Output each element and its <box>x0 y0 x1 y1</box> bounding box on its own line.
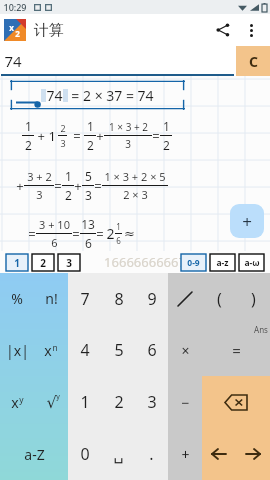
button[interactable]: = <box>202 324 270 376</box>
staticText: 3 <box>147 391 157 413</box>
staticText: √ <box>46 393 57 412</box>
staticText: ≈ <box>124 226 135 241</box>
staticText: × <box>181 341 190 360</box>
button[interactable]: 1 <box>68 376 102 428</box>
staticText: 2 <box>106 224 115 243</box>
staticText: + <box>242 210 252 233</box>
staticText: 0-9 <box>187 257 200 269</box>
button[interactable]: ) <box>236 273 270 324</box>
staticText: 2 <box>60 122 66 134</box>
staticText: = <box>54 177 62 195</box>
button[interactable]: 8 <box>102 273 135 324</box>
staticText: 2 <box>65 187 72 203</box>
button[interactable]: n! <box>34 273 68 324</box>
staticText: 2 <box>87 137 94 153</box>
staticText: 2 <box>25 137 32 153</box>
button[interactable]: 2 <box>102 376 135 428</box>
staticText: 2 <box>15 28 20 39</box>
staticText: + <box>16 177 24 195</box>
button[interactable]: 3 <box>135 376 168 428</box>
staticText: n <box>52 342 58 353</box>
button[interactable]: + <box>168 428 202 480</box>
staticText: a-ω <box>244 257 260 269</box>
button[interactable]: Share <box>210 17 236 43</box>
staticText: 3 <box>66 256 72 270</box>
button[interactable]: a-z <box>210 254 235 271</box>
button[interactable]: Move right <box>236 428 270 480</box>
staticText: ␣ <box>113 445 124 464</box>
button[interactable]: Fraction <box>168 273 202 324</box>
button[interactable]: Move left <box>202 428 236 480</box>
staticText: C <box>249 52 258 71</box>
staticText: ) <box>251 288 256 310</box>
staticText: 1 <box>25 118 32 134</box>
staticText: 3 <box>125 137 131 151</box>
staticText: x <box>11 393 19 412</box>
button[interactable]: 5 <box>102 324 135 376</box>
staticText: 6 <box>85 235 92 251</box>
staticText: 2 <box>163 137 170 153</box>
staticText: ( <box>217 288 222 310</box>
staticText: 3 <box>36 187 43 202</box>
button[interactable]: x <box>0 376 34 428</box>
button[interactable]: 1 <box>6 254 28 271</box>
button[interactable]: 0-9 <box>181 254 206 271</box>
button[interactable]: − <box>168 376 202 428</box>
staticText: 1 × 3 + 2 × 5 <box>104 169 166 184</box>
button[interactable]: More options <box>238 17 264 43</box>
button[interactable]: Backspace <box>202 376 270 428</box>
staticText: x <box>44 341 52 360</box>
staticText: 6 <box>116 235 121 246</box>
button[interactable]: Add <box>230 204 264 238</box>
staticText: 计算 <box>34 21 64 40</box>
staticText: 2 <box>40 256 46 270</box>
staticText: 1 <box>65 168 72 184</box>
button[interactable]: 2 <box>32 254 54 271</box>
staticText: 0 <box>80 443 90 465</box>
staticText: Ans <box>254 324 268 335</box>
button[interactable]: 7 <box>68 273 102 324</box>
button[interactable]: a-ω <box>239 254 264 271</box>
staticText: = <box>28 225 36 243</box>
button[interactable]: a-Z <box>0 428 68 480</box>
button[interactable]: C <box>236 46 270 76</box>
button[interactable]: 6 <box>135 324 168 376</box>
staticText: 9 <box>147 288 157 310</box>
button[interactable]: ( <box>202 273 236 324</box>
staticText: = <box>152 127 160 145</box>
button[interactable]: 0 <box>68 428 102 480</box>
staticText: 5 <box>114 339 124 361</box>
staticText: = <box>94 177 102 195</box>
staticText: n! <box>45 289 58 308</box>
staticText: 1 × 3 + 2 <box>109 120 148 134</box>
staticText: . <box>149 443 154 465</box>
staticText: 2 <box>114 391 124 413</box>
staticText: + 1 <box>34 127 56 145</box>
staticText: 1 <box>116 221 121 232</box>
staticText: 1 <box>14 256 20 270</box>
staticText: − <box>181 393 190 412</box>
button[interactable]: 3 <box>58 254 80 271</box>
staticText: 1 <box>87 118 94 134</box>
button[interactable]: 4 <box>68 324 102 376</box>
button[interactable]: ␣ <box>102 428 135 480</box>
staticText: 3 <box>85 187 92 203</box>
button[interactable]: % <box>0 273 34 324</box>
button[interactable]: x <box>34 324 68 376</box>
button[interactable]: √ <box>34 376 68 428</box>
staticText: = <box>72 225 80 243</box>
button[interactable]: × <box>168 324 202 376</box>
staticText: 7 <box>80 288 90 310</box>
staticText: a-z <box>216 257 229 269</box>
staticText: 5 <box>85 168 92 184</box>
staticText: 74 <box>4 51 22 71</box>
staticText: + <box>96 127 104 145</box>
staticText: = <box>73 127 81 145</box>
staticText: + <box>74 177 82 195</box>
button[interactable]: |x| <box>0 324 34 376</box>
staticText: = <box>96 225 104 243</box>
button[interactable]: . <box>135 428 168 480</box>
staticText: 3 + 10 <box>39 217 70 232</box>
staticText: 2 × 3 <box>123 187 148 202</box>
button[interactable]: 9 <box>135 273 168 324</box>
